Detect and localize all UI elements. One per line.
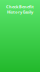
staticText: Check Benefit	[6, 4, 34, 9]
staticText: History Easily	[7, 9, 33, 15]
